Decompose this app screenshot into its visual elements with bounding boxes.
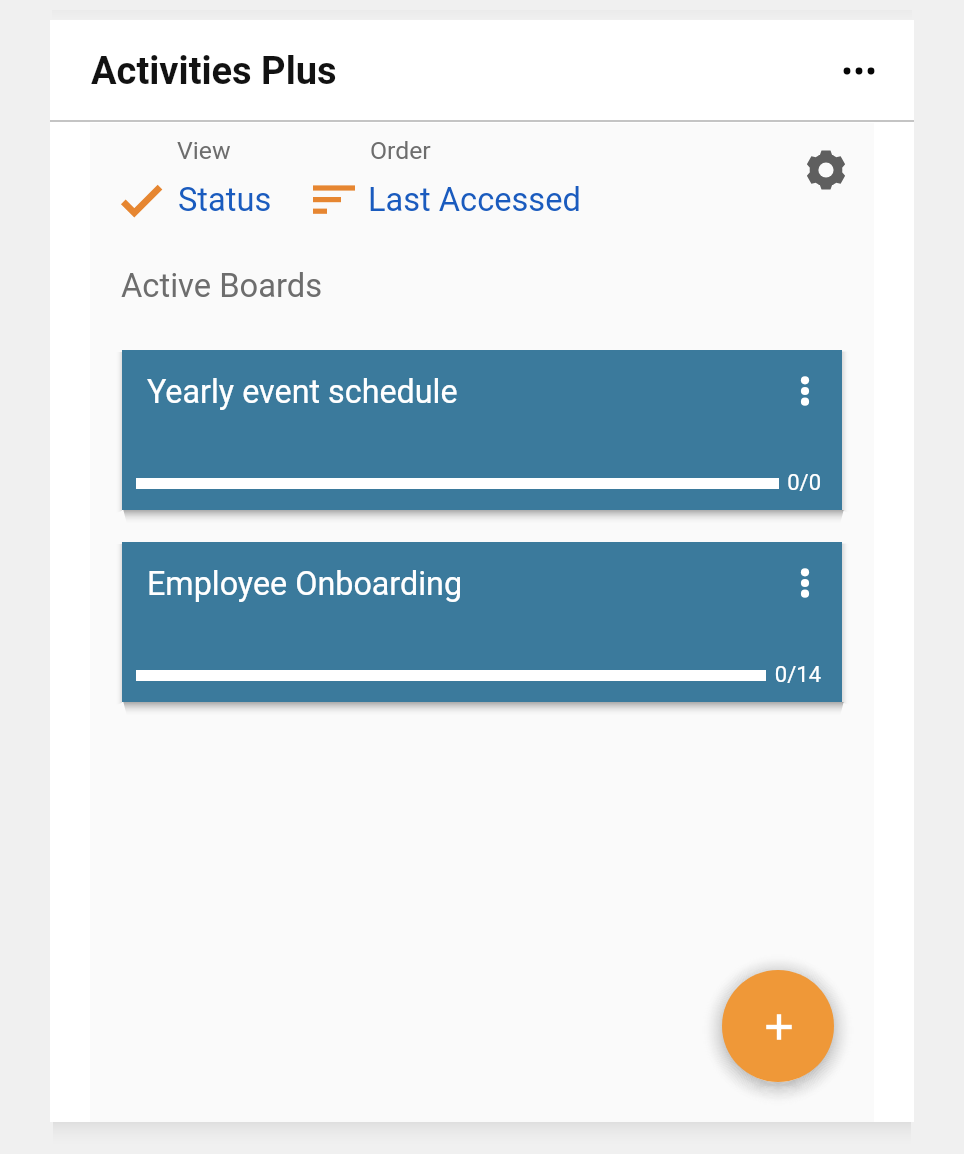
button[interactable]: Board options bbox=[775, 357, 835, 425]
staticText: 0/0 bbox=[787, 470, 821, 496]
staticText: Yearly event schedule bbox=[147, 373, 458, 411]
staticText: Status bbox=[178, 181, 272, 219]
button[interactable]: Last Accessed bbox=[309, 177, 581, 223]
button[interactable]: Board options bbox=[775, 549, 835, 617]
staticText: Employee Onboarding bbox=[147, 565, 463, 603]
staticText: Activities Plus bbox=[91, 49, 337, 94]
staticText: Active Boards bbox=[121, 267, 323, 305]
staticText: Order bbox=[370, 136, 431, 165]
button[interactable]: Status bbox=[117, 177, 272, 223]
button[interactable]: Settings bbox=[798, 142, 854, 198]
staticText: Last Accessed bbox=[368, 181, 581, 219]
button[interactable]: Add board bbox=[722, 970, 834, 1082]
button[interactable]: Employee Onboarding bbox=[122, 542, 842, 702]
staticText: View bbox=[177, 136, 231, 165]
button[interactable]: More options bbox=[821, 47, 897, 95]
staticText: 0/14 bbox=[774, 662, 821, 688]
button[interactable]: Yearly event schedule bbox=[122, 350, 842, 510]
